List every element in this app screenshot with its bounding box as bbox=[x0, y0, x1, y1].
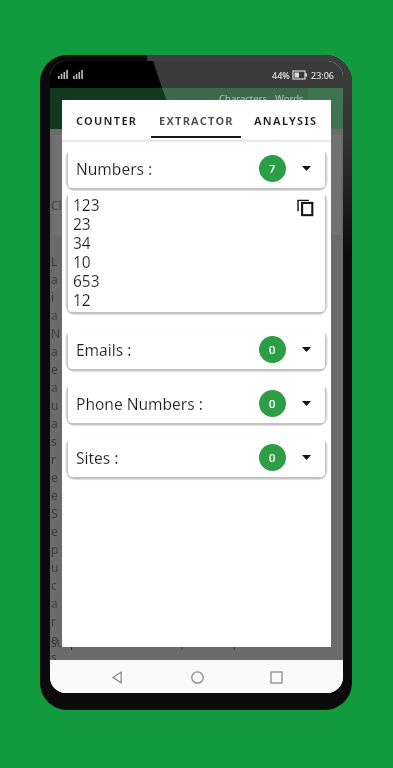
staticText: 23:06 bbox=[311, 69, 335, 81]
staticText: 0 bbox=[269, 396, 276, 411]
staticText: Words bbox=[275, 92, 304, 105]
staticText: 123 23 34 10 653 12 bbox=[73, 194, 100, 311]
staticText: COUNTER bbox=[76, 113, 138, 128]
button[interactable]: Phone Numbers : bbox=[68, 383, 325, 423]
button[interactable]: Emails : bbox=[68, 329, 325, 369]
staticText: Cl bbox=[51, 197, 62, 213]
button[interactable]: Sites : bbox=[68, 437, 325, 477]
button[interactable]: Home bbox=[184, 664, 210, 690]
button[interactable]: COUNTER bbox=[62, 100, 151, 140]
staticText: L a i a N a e a u a s r e e S e p u c a … bbox=[51, 253, 61, 683]
staticText: 0 bbox=[269, 450, 276, 465]
button[interactable]: Recent apps bbox=[263, 664, 289, 690]
button[interactable]: EXTRACTOR bbox=[151, 100, 241, 140]
button[interactable]: Back bbox=[104, 664, 130, 690]
staticText: 7 bbox=[269, 161, 276, 176]
staticText: Phone Numbers : bbox=[76, 393, 203, 414]
staticText: Characters bbox=[219, 92, 268, 105]
staticText: Numbers : bbox=[76, 158, 153, 179]
button[interactable]: ANALYSIS bbox=[241, 100, 331, 140]
staticText: 44% bbox=[272, 69, 290, 81]
staticText: suspendisse. Sed risus pretium quam bbox=[51, 634, 262, 650]
staticText: ANALYSIS bbox=[254, 113, 318, 128]
button[interactable]: Copy bbox=[297, 199, 314, 216]
staticText: EXTRACTOR bbox=[159, 113, 234, 128]
staticText: 0 bbox=[269, 342, 276, 357]
button[interactable]: Numbers : bbox=[68, 148, 325, 188]
staticText: Sites : bbox=[76, 447, 119, 468]
staticText: Emails : bbox=[76, 339, 132, 360]
